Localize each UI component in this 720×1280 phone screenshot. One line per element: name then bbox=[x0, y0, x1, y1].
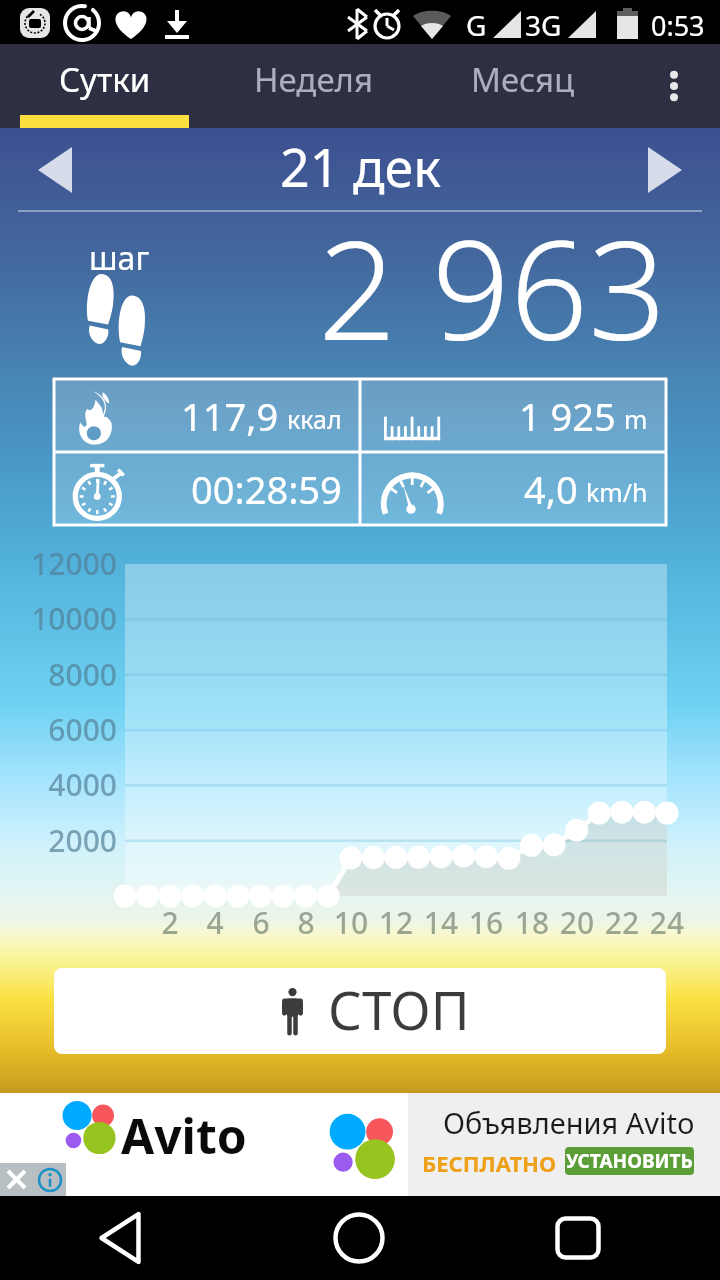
staticText: 12 bbox=[366, 902, 426, 943]
staticText: 3G bbox=[525, 6, 562, 44]
staticText: 12000 bbox=[0, 543, 117, 584]
button[interactable]: Back bbox=[70, 1196, 170, 1280]
staticText: 6000 bbox=[0, 709, 117, 750]
staticText: Объявления Avito bbox=[443, 1103, 695, 1142]
staticText: m bbox=[624, 402, 648, 436]
staticText: 24 bbox=[637, 902, 697, 943]
button[interactable]: 1 925 bbox=[360, 379, 666, 452]
staticText: 22 bbox=[592, 902, 652, 943]
button[interactable]: 00:28:59 bbox=[54, 452, 360, 525]
staticText: 4 bbox=[185, 902, 245, 943]
staticText: 1 925 bbox=[519, 390, 616, 442]
staticText: 0:53 bbox=[651, 7, 705, 44]
staticText: 14 bbox=[411, 902, 471, 943]
staticText: 10 bbox=[321, 902, 381, 943]
button[interactable]: СТОП bbox=[54, 968, 666, 1054]
staticText: Avito bbox=[121, 1103, 247, 1168]
staticText: УСТАНОВИТЬ bbox=[566, 1148, 693, 1174]
staticText: Неделя bbox=[254, 57, 373, 102]
staticText: 117,9 bbox=[181, 390, 279, 442]
staticText: шаг bbox=[89, 236, 150, 280]
staticText: 2000 bbox=[0, 820, 117, 861]
button[interactable]: Home bbox=[309, 1196, 409, 1280]
staticText: 00:28:59 bbox=[191, 463, 342, 515]
button[interactable]: Ad info bbox=[33, 1163, 66, 1196]
staticText: 21 дек bbox=[280, 131, 441, 202]
staticText: 16 bbox=[456, 902, 516, 943]
staticText: km/h bbox=[586, 475, 648, 509]
button[interactable]: 4,0 bbox=[360, 452, 666, 525]
staticText: 8000 bbox=[0, 654, 117, 695]
button[interactable]: Next day bbox=[630, 140, 700, 200]
staticText: Сутки bbox=[59, 57, 151, 102]
button[interactable]: 117,9 bbox=[54, 379, 360, 452]
button[interactable]: Неделя bbox=[209, 44, 418, 128]
button[interactable]: Close ad bbox=[0, 1163, 33, 1196]
button[interactable]: More options bbox=[627, 44, 720, 128]
staticText: 20 bbox=[547, 902, 607, 943]
staticText: 2 bbox=[140, 902, 200, 943]
staticText: ккал bbox=[287, 402, 342, 436]
button[interactable]: Previous day bbox=[20, 140, 90, 200]
button[interactable]: Recents bbox=[528, 1196, 628, 1280]
staticText: 2 963 bbox=[318, 194, 667, 354]
staticText: 10000 bbox=[0, 598, 117, 639]
staticText: СТОП bbox=[328, 973, 470, 1045]
staticText: Месяц bbox=[471, 57, 575, 102]
button[interactable]: Avito bbox=[0, 1093, 720, 1196]
staticText: 8 bbox=[276, 902, 336, 943]
button[interactable]: УСТАНОВИТЬ bbox=[565, 1147, 694, 1175]
staticText: 6 bbox=[231, 902, 291, 943]
staticText: 18 bbox=[502, 902, 562, 943]
staticText: G bbox=[466, 6, 487, 44]
button[interactable]: Сутки bbox=[0, 44, 209, 128]
staticText: 4000 bbox=[0, 764, 117, 805]
staticText: БЕСПЛАТНО bbox=[422, 1148, 557, 1178]
button[interactable]: Месяц bbox=[418, 44, 627, 128]
staticText: 4,0 bbox=[524, 463, 578, 515]
